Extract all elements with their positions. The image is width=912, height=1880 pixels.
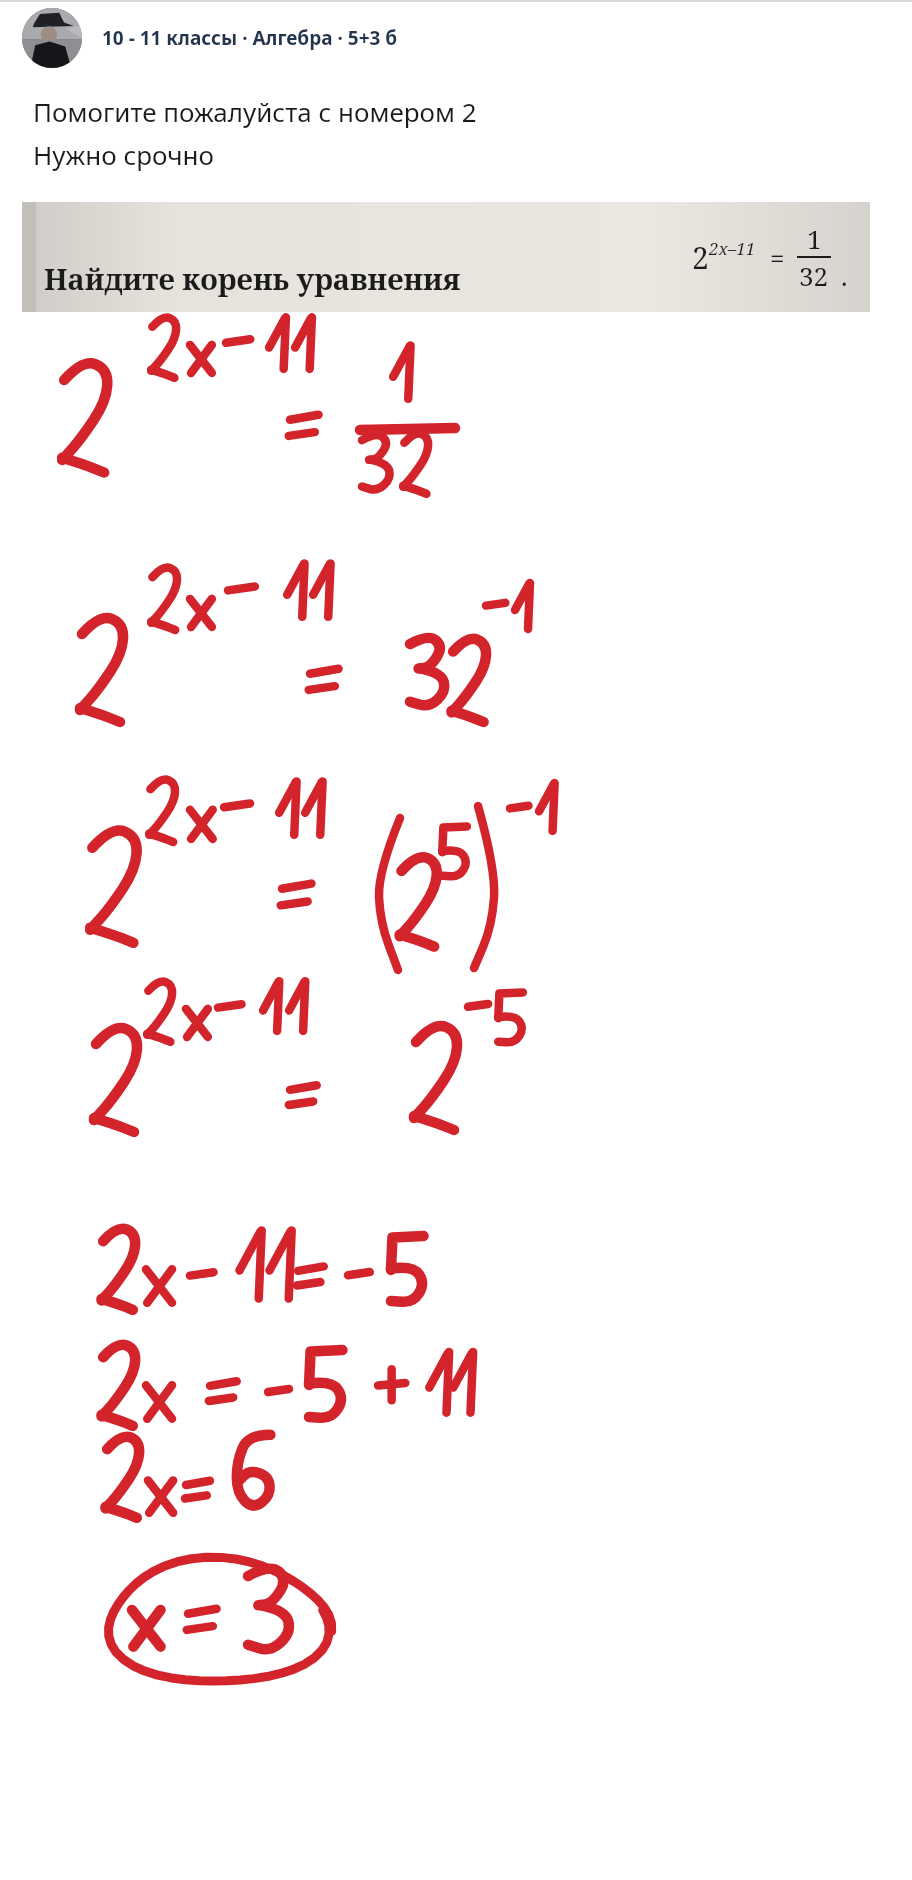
staticText: 1 bbox=[807, 221, 822, 256]
staticText: = bbox=[770, 240, 785, 275]
staticText: 2x–11 bbox=[709, 237, 756, 260]
staticText: 32 bbox=[799, 258, 829, 293]
button[interactable]: Author avatar bbox=[0, 6, 912, 70]
staticText: Помогите пожалуйста с номером 2 bbox=[33, 94, 477, 129]
staticText: 2 bbox=[692, 237, 709, 278]
staticText: Найдите корень уравнения bbox=[44, 259, 461, 298]
staticText: . bbox=[841, 258, 848, 293]
button[interactable]: Найдите корень уравнения bbox=[22, 202, 870, 312]
staticText: 10 - 11 классы · Алгебра · 5+3 б bbox=[102, 25, 398, 51]
other: Author avatar bbox=[22, 8, 82, 68]
staticText: Нужно срочно bbox=[33, 137, 214, 172]
